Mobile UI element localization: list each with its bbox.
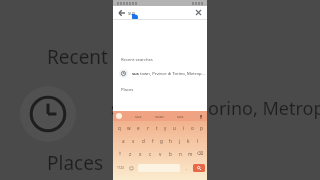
button[interactable]: Clear search (194, 8, 203, 17)
staticText: sus (177, 114, 184, 119)
button[interactable]: q (114, 122, 124, 133)
staticText: f (152, 138, 154, 144)
button[interactable]: y (161, 122, 170, 133)
button[interactable]: ☺ (126, 161, 137, 175)
staticText: r (147, 125, 149, 131)
staticText: tow (140, 96, 172, 121)
staticText: u (173, 125, 176, 131)
staticText: Recent searches (121, 57, 153, 63)
staticText: sus (135, 114, 142, 119)
staticText: l (197, 138, 199, 144)
button[interactable]: a (118, 135, 128, 146)
button[interactable]: Search (193, 164, 205, 172)
staticText: s (132, 138, 135, 144)
staticText: k (187, 138, 190, 144)
staticText: x (139, 151, 142, 157)
button[interactable]: . (181, 161, 192, 175)
button[interactable]: w (124, 122, 134, 133)
staticText: suso (155, 114, 164, 119)
staticText: town, Prvince di Torino, Metrop… (139, 71, 205, 77)
staticText: Places (47, 150, 103, 176)
button[interactable]: Back (113, 6, 207, 19)
staticText: ☺ (129, 166, 134, 171)
button[interactable]: v (155, 148, 165, 159)
staticText: i (183, 125, 185, 131)
staticText: t (156, 125, 158, 131)
staticText: m (188, 151, 193, 157)
button[interactable]: k (184, 135, 193, 146)
button[interactable]: ⌫ (195, 148, 206, 159)
button[interactable]: h (166, 135, 175, 146)
staticText: h (169, 138, 172, 144)
staticText: e (137, 125, 140, 131)
staticText: c (149, 151, 152, 157)
button[interactable]: n (175, 148, 185, 159)
button[interactable]: l (193, 135, 202, 146)
staticText: g (160, 138, 163, 144)
staticText: sus (111, 96, 141, 121)
staticText: o (191, 125, 194, 131)
staticText: . (186, 165, 188, 171)
button[interactable]: j (175, 135, 184, 146)
staticText: Recent searches (47, 44, 192, 70)
staticText: y (164, 125, 167, 131)
button[interactable]: m (185, 148, 195, 159)
staticText: w (127, 125, 131, 131)
button[interactable]: o (188, 122, 197, 133)
button[interactable]: p (197, 122, 206, 133)
button[interactable]: ⇧ (114, 148, 125, 159)
button[interactable]: Voice input (197, 113, 204, 120)
staticText: ⇧ (118, 151, 122, 156)
button[interactable]: i (179, 122, 188, 133)
button[interactable]: Google (116, 113, 122, 119)
staticText: Places (121, 87, 134, 93)
button[interactable]: sus (113, 67, 207, 80)
button[interactable]: d (138, 135, 148, 146)
staticText: n (179, 151, 182, 157)
button[interactable]: g (157, 135, 166, 146)
button[interactable]: s (128, 135, 138, 146)
button[interactable]: z (125, 148, 135, 159)
staticText: z (129, 151, 132, 157)
staticText: v (159, 151, 162, 157)
staticText: sus (132, 71, 139, 77)
staticText: j (179, 138, 181, 144)
staticText: a (122, 138, 125, 144)
button[interactable]: b (165, 148, 175, 159)
staticText: d (142, 138, 145, 144)
button[interactable]: u (170, 122, 179, 133)
button[interactable]: ?123 (114, 161, 126, 175)
button[interactable]: Back (117, 8, 126, 17)
staticText: q (118, 125, 121, 131)
button[interactable]: f (148, 135, 157, 146)
button[interactable]: e (134, 122, 143, 133)
button[interactable]: c (145, 148, 155, 159)
button[interactable]: r (143, 122, 152, 133)
staticText: ?123 (117, 166, 124, 170)
staticText: b (169, 151, 172, 157)
staticText: orino, Metrop… (208, 96, 320, 121)
staticText: ⌫ (197, 151, 204, 156)
staticText: p (200, 125, 203, 131)
staticText: sus (128, 10, 136, 16)
button[interactable]: t (152, 122, 161, 133)
button[interactable]: x (135, 148, 145, 159)
